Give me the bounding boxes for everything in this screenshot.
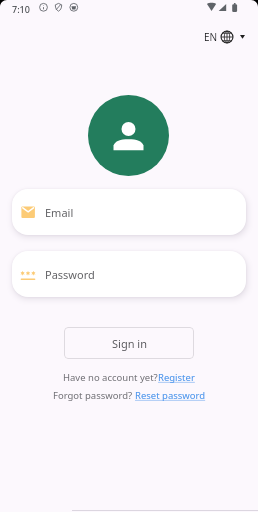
button[interactable]: Reset password [135,389,206,402]
button[interactable]: Email [12,189,246,235]
staticText: Reset password [135,389,206,402]
staticText: Register [158,371,195,384]
button[interactable]: Password [12,251,246,297]
staticText: Sign in [112,336,147,351]
staticText: EN [204,30,218,44]
staticText: Forgot password? [53,389,135,402]
button[interactable]: Sign in [64,327,194,359]
staticText: Password [45,267,95,282]
button[interactable]: Register [158,371,195,384]
staticText: 7:10 [12,3,30,15]
staticText: Email [45,205,74,220]
staticText: Have no account yet? [63,371,158,384]
button[interactable]: Select language [204,28,245,45]
button[interactable]: Profile avatar [88,95,169,176]
